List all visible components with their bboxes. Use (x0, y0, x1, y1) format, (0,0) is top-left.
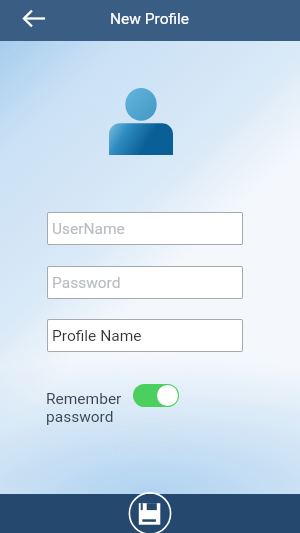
staticText: UserName (52, 220, 125, 238)
staticText: Profile Name (52, 327, 142, 345)
staticText: Remember password (46, 390, 122, 426)
button[interactable]: Profile Name (48, 320, 242, 351)
staticText: New Profile (110, 10, 190, 28)
button[interactable]: Back (12, 0, 57, 39)
button[interactable]: UserName (48, 213, 242, 244)
button[interactable]: Password (48, 267, 242, 298)
staticText: Password (52, 274, 121, 292)
button[interactable]: Save (129, 494, 171, 533)
button[interactable]: Remember password toggle (133, 384, 179, 407)
